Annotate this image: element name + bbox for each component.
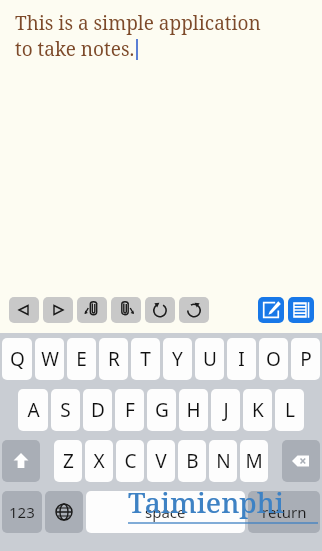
staticText: S	[60, 397, 71, 423]
button[interactable]: W	[35, 338, 64, 380]
button[interactable]: H	[179, 389, 208, 431]
button[interactable]: T	[131, 338, 160, 380]
staticText: O	[266, 346, 281, 372]
staticText: return	[262, 502, 307, 522]
staticText: 123	[9, 502, 35, 522]
staticText: T	[140, 346, 151, 372]
staticText: R	[108, 346, 120, 372]
button[interactable]: Shift	[2, 440, 40, 482]
staticText: J	[223, 397, 229, 423]
button[interactable]: C	[116, 440, 144, 482]
button[interactable]: S	[51, 389, 80, 431]
button[interactable]: Change keyboard	[45, 491, 83, 533]
button[interactable]: P	[291, 338, 320, 380]
button[interactable]: X	[85, 440, 113, 482]
button[interactable]: F	[115, 389, 144, 431]
staticText: I	[238, 346, 245, 372]
staticText: F	[125, 397, 135, 423]
button[interactable]: Compose	[258, 297, 284, 323]
staticText: Q	[10, 346, 25, 372]
button[interactable]: B	[178, 440, 206, 482]
staticText: C	[124, 448, 137, 474]
staticText: H	[186, 397, 201, 423]
button[interactable]: K	[243, 389, 272, 431]
staticText: U	[203, 346, 217, 372]
staticText: Y	[172, 346, 183, 372]
button[interactable]: Backspace	[282, 440, 320, 482]
button[interactable]: Y	[163, 338, 192, 380]
button[interactable]: A	[18, 389, 48, 431]
staticText: N	[216, 448, 231, 474]
button[interactable]: N	[209, 440, 237, 482]
button[interactable]: I	[227, 338, 256, 380]
button[interactable]: Attach previous	[77, 297, 107, 323]
staticText: M	[245, 448, 263, 474]
staticText: D	[91, 397, 105, 423]
button[interactable]: J	[211, 389, 240, 431]
button[interactable]: space	[86, 491, 245, 533]
staticText: E	[76, 346, 87, 372]
staticText: P	[300, 346, 312, 372]
button[interactable]: E	[67, 338, 96, 380]
button[interactable]: U	[195, 338, 224, 380]
button[interactable]: V	[147, 440, 175, 482]
button[interactable]: Notes list	[288, 297, 314, 323]
button[interactable]: return	[248, 491, 320, 533]
button[interactable]: Next	[43, 297, 73, 323]
button[interactable]: M	[240, 440, 268, 482]
staticText: V	[155, 448, 167, 474]
button[interactable]: Previous	[9, 297, 39, 323]
button[interactable]: O	[259, 338, 288, 380]
staticText: to take notes.	[15, 36, 135, 62]
staticText: space	[145, 502, 186, 522]
button[interactable]: Undo	[145, 297, 175, 323]
staticText: K	[252, 397, 264, 423]
staticText: G	[155, 397, 169, 423]
staticText: B	[186, 448, 199, 474]
staticText: Taimienphi	[128, 483, 285, 521]
button[interactable]: D	[83, 389, 112, 431]
staticText: L	[285, 397, 295, 423]
staticText: A	[27, 397, 40, 423]
staticText: X	[93, 448, 105, 474]
button[interactable]: L	[275, 389, 304, 431]
button[interactable]: Attach next	[111, 297, 141, 323]
staticText: Z	[63, 448, 74, 474]
button[interactable]: 123	[2, 491, 42, 533]
button[interactable]: G	[147, 389, 176, 431]
staticText: This is a simple application	[15, 10, 261, 36]
button[interactable]: Redo	[179, 297, 209, 323]
staticText: W	[41, 346, 59, 372]
button[interactable]: Z	[54, 440, 82, 482]
button[interactable]: Q	[2, 338, 32, 380]
button[interactable]: R	[99, 338, 128, 380]
